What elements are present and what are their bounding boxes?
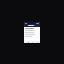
- button[interactable]: Search: [31, 41, 33, 43]
- button[interactable]: Home: [27, 41, 29, 43]
- button[interactable]: Profile: [36, 41, 38, 43]
